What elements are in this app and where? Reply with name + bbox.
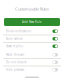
staticText: Add New Rule [22, 20, 42, 24]
button[interactable]: Smart replies [3, 43, 61, 49]
button[interactable]: Add New Rule [4, 18, 60, 26]
button[interactable]: Do not disturb [3, 59, 61, 65]
button[interactable]: Block notifications [3, 28, 61, 34]
staticText: Auto archive [6, 37, 23, 40]
button[interactable]: Mute threads [3, 51, 61, 58]
staticText: Mute threads [6, 53, 24, 56]
staticText: Smart replies [6, 44, 23, 48]
staticText: Hide previews [6, 68, 24, 71]
button[interactable]: Hide previews [3, 66, 61, 73]
button[interactable]: Auto archive [3, 35, 61, 42]
staticText: Block notifications [6, 29, 31, 33]
staticText: Do not disturb [6, 60, 27, 64]
staticText: Customizable Rules [15, 6, 49, 12]
